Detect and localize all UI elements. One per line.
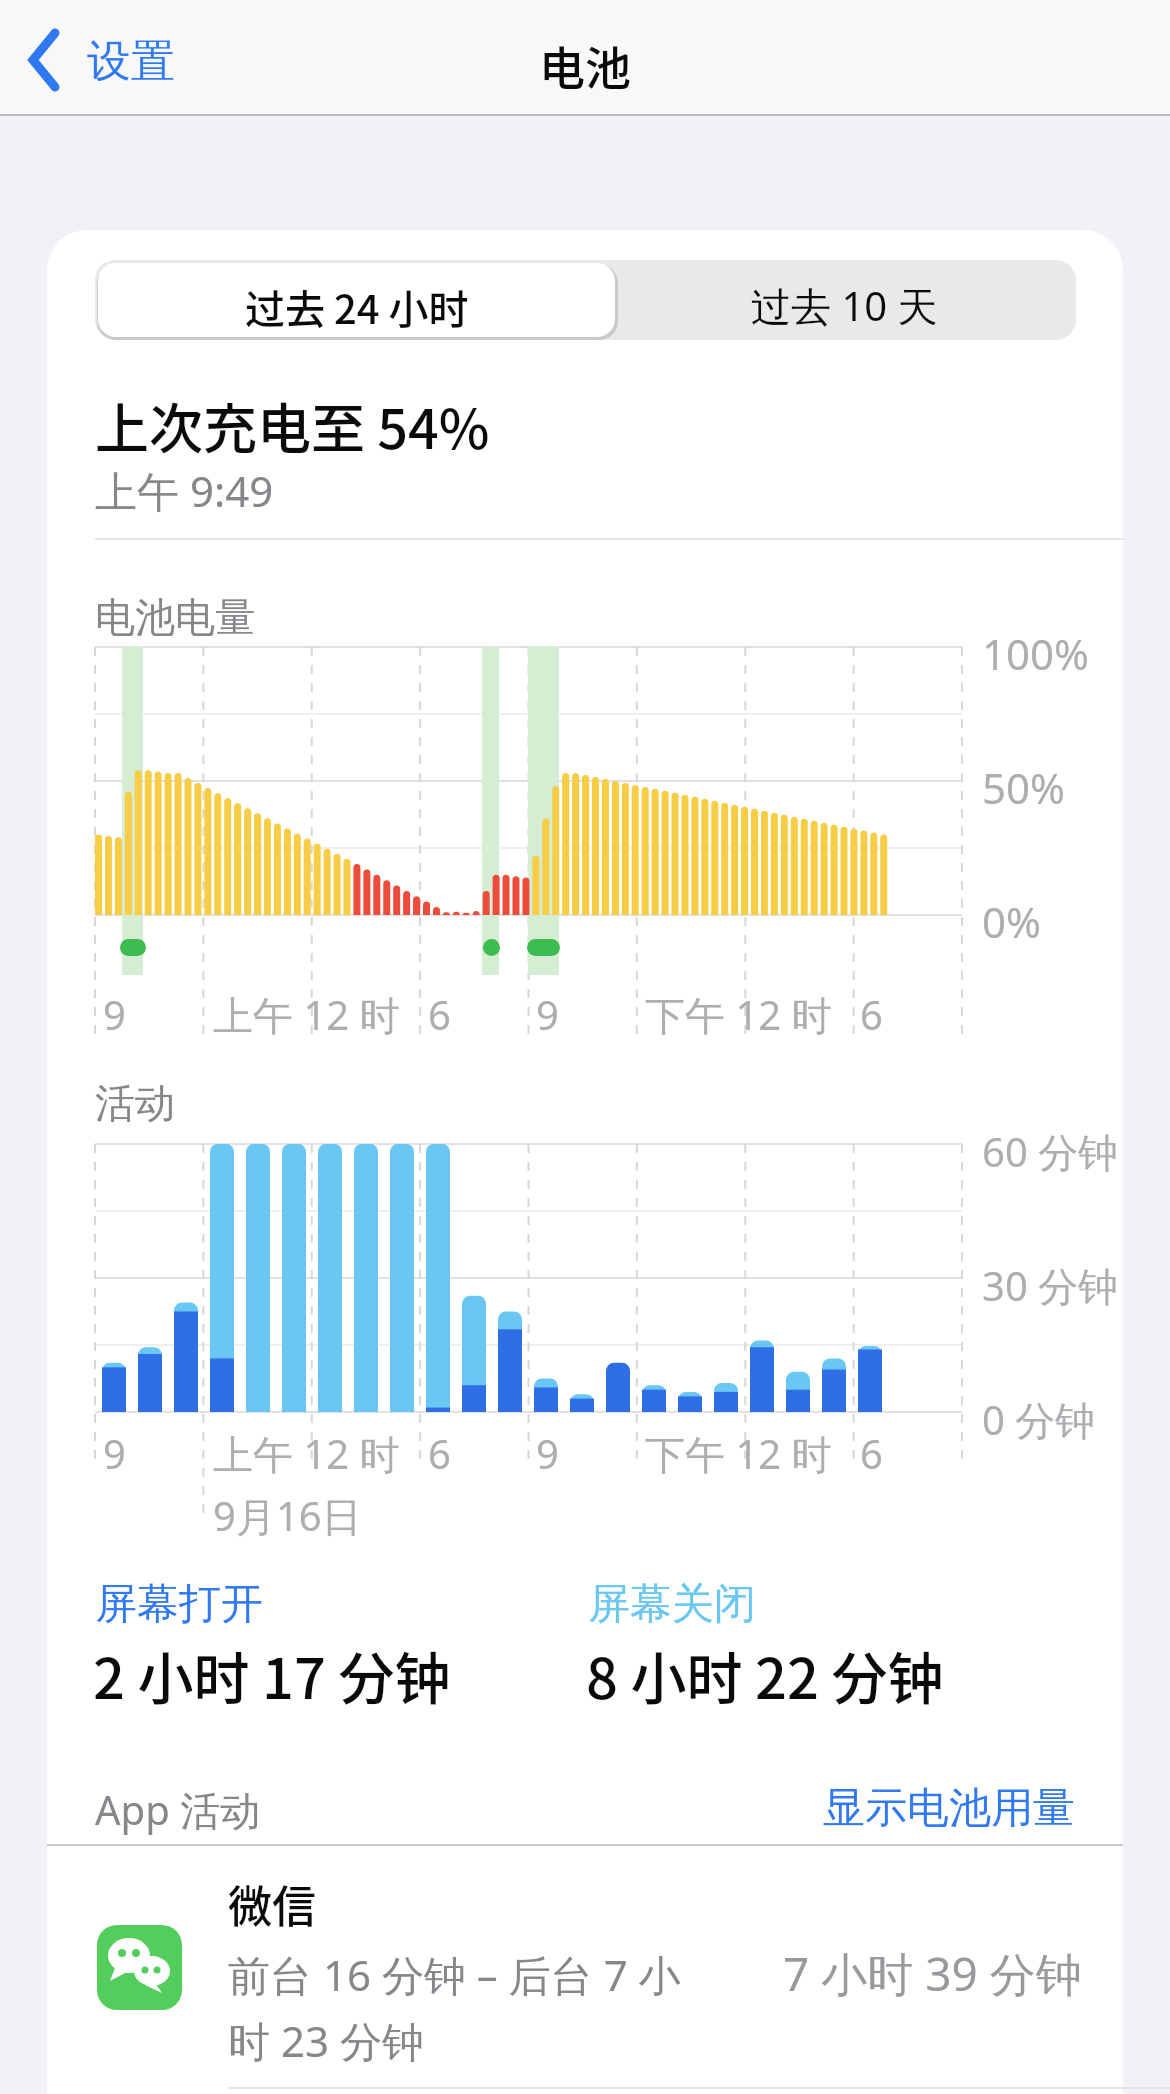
staticText: 6 <box>428 1426 451 1480</box>
staticText: 屏幕关闭 <box>588 1578 756 1631</box>
staticText: 下午 12 时 <box>645 1426 832 1481</box>
staticText: 0 分钟 <box>982 1392 1096 1447</box>
staticText: 9 <box>103 987 126 1041</box>
staticText: 9 <box>103 1426 126 1480</box>
staticText: 微信 <box>228 1872 316 1936</box>
button[interactable]: 显示电池用量 <box>675 1782 1075 1835</box>
staticText: App 活动 <box>95 1782 261 1837</box>
staticText: 电池电量 <box>95 592 255 642</box>
staticText: 6 <box>860 1426 883 1480</box>
staticText: 上午 9:49 <box>95 462 274 519</box>
staticText: 上午 12 时 <box>213 987 400 1042</box>
staticText: 6 <box>860 987 883 1041</box>
staticText: 9月16日 <box>213 1488 362 1543</box>
staticText: 100% <box>982 625 1089 682</box>
staticText: 上午 12 时 <box>213 1426 400 1481</box>
staticText: 活动 <box>95 1078 175 1128</box>
staticText: 设置 <box>87 34 175 89</box>
staticText: 前台 16 分钟 – 后台 7 小 <box>228 1946 681 2003</box>
staticText: 9 <box>536 1426 559 1480</box>
staticText: 显示电池用量 <box>823 1782 1075 1835</box>
staticText: 50% <box>982 759 1065 816</box>
staticText: 电池 <box>539 32 631 99</box>
button[interactable] <box>20 20 200 100</box>
staticText: 2 小时 17 分钟 <box>93 1634 451 1715</box>
staticText: 6 <box>428 987 451 1041</box>
staticText: 60 分钟 <box>982 1124 1119 1179</box>
staticText: 屏幕打开 <box>95 1578 263 1631</box>
staticText: 下午 12 时 <box>645 987 832 1042</box>
staticText: 0% <box>982 893 1041 950</box>
staticText: 30 分钟 <box>982 1258 1119 1313</box>
staticText: 7 小时 39 分钟 <box>783 1942 1082 2005</box>
staticText: 上次充电至 54% <box>95 386 490 464</box>
button[interactable] <box>47 1846 1123 2090</box>
staticText: 过去 24 小时 <box>245 278 469 336</box>
staticText: 9 <box>536 987 559 1041</box>
staticText: 过去 10 天 <box>751 278 938 333</box>
button[interactable] <box>615 263 1073 337</box>
button[interactable] <box>98 263 615 337</box>
staticText: 8 小时 22 分钟 <box>586 1634 944 1715</box>
staticText: 时 23 分钟 <box>228 2012 424 2069</box>
